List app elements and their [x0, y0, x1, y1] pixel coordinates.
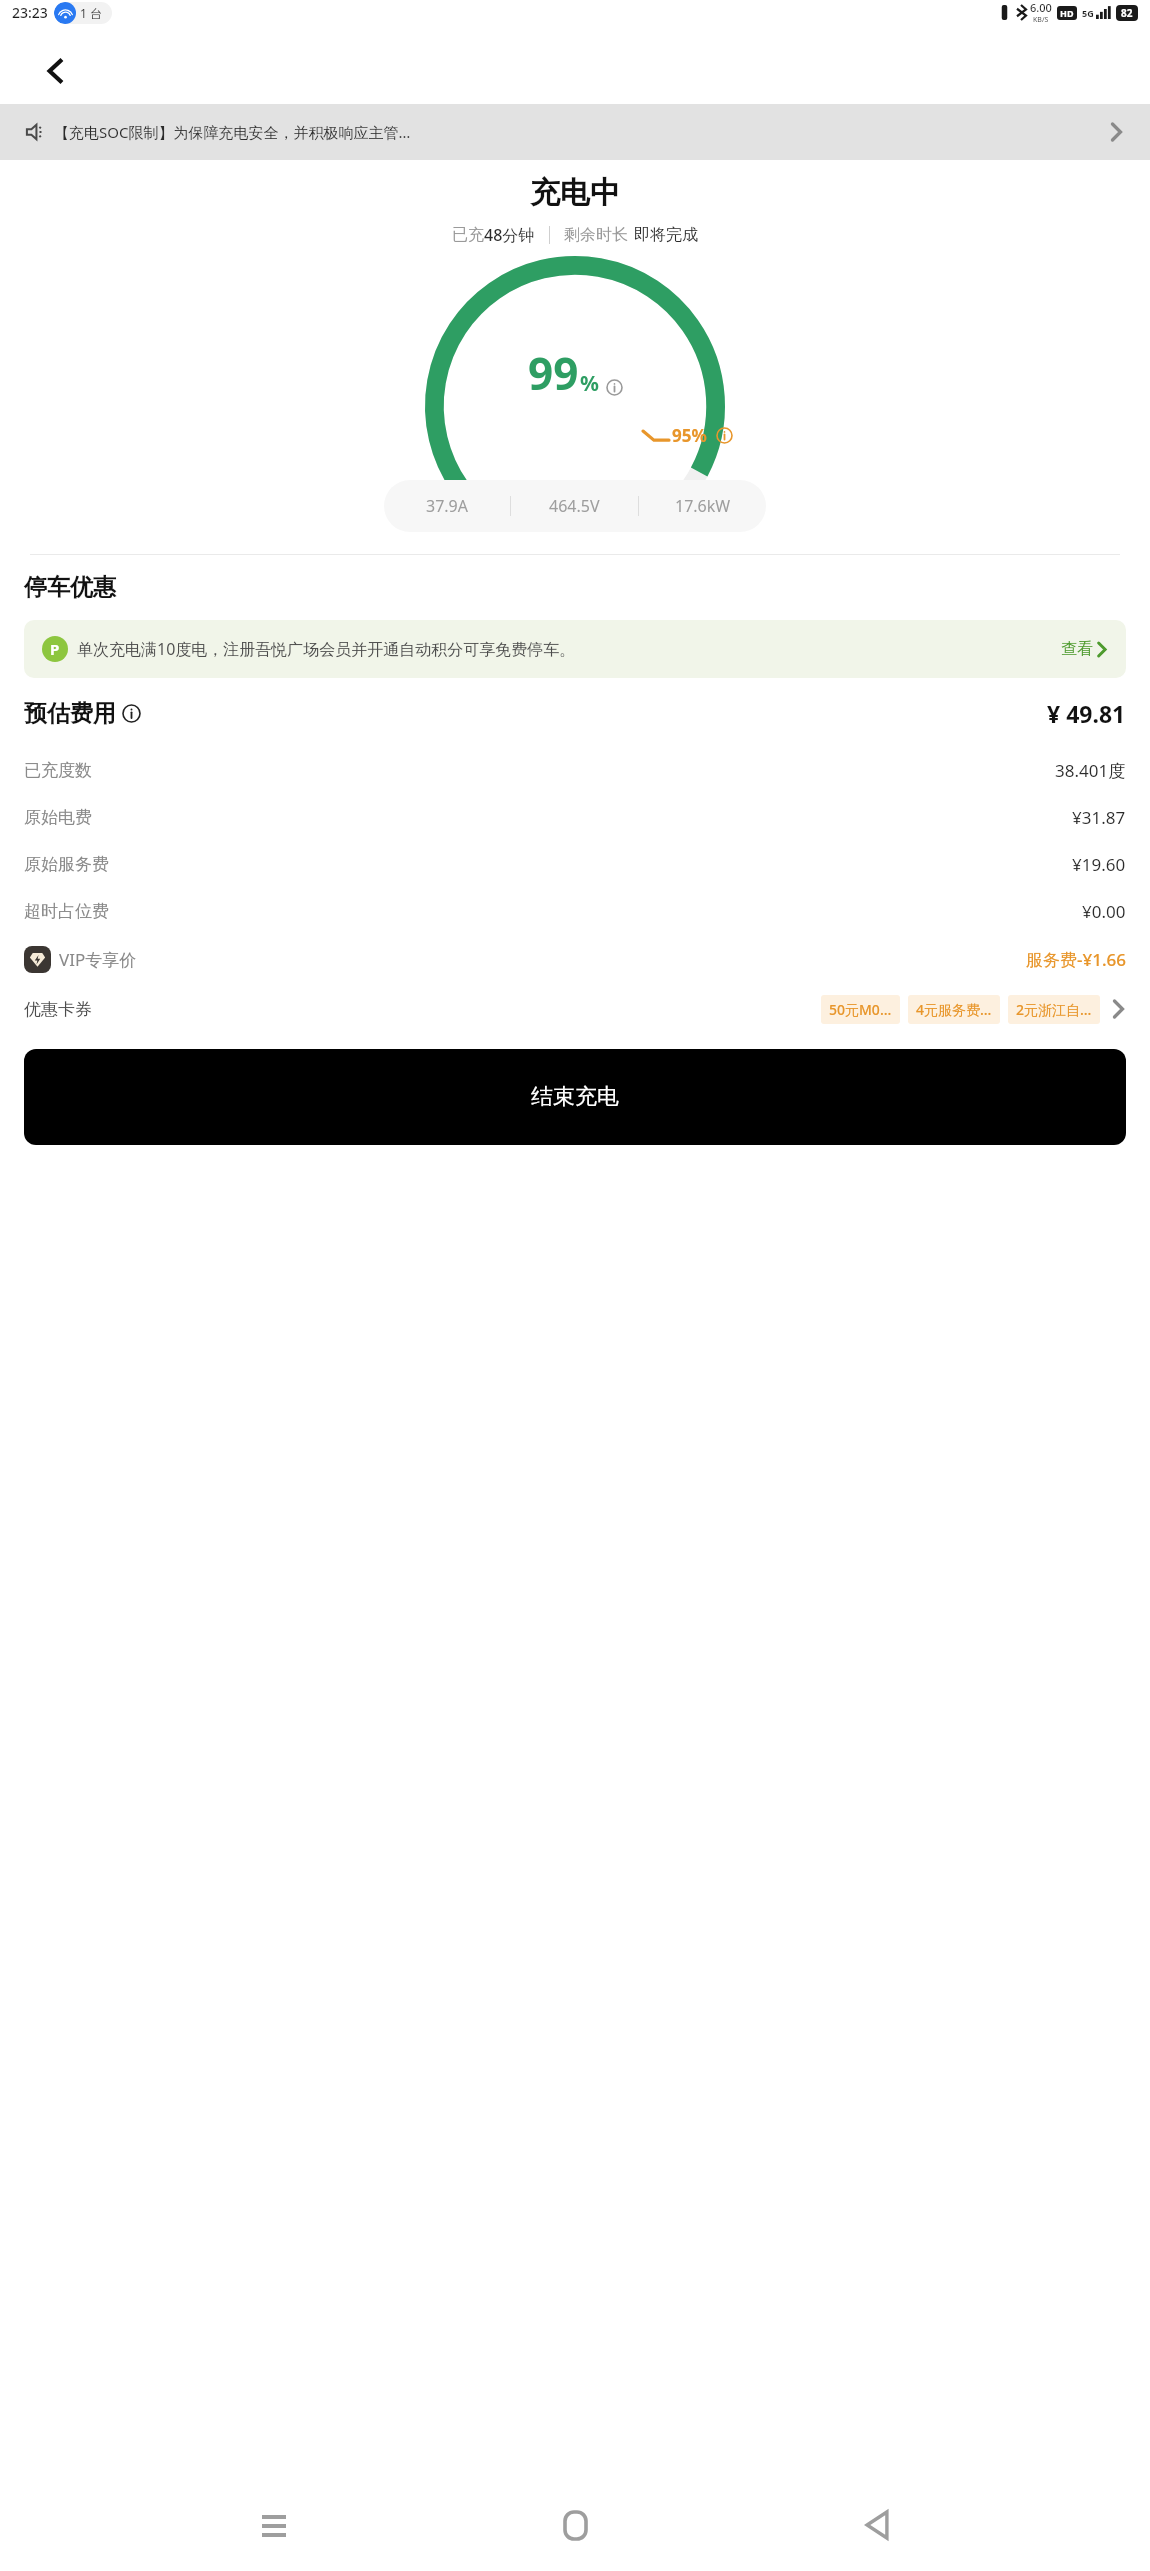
- staticText: 已充度数: [24, 760, 92, 781]
- staticText: 充电中: [530, 174, 620, 212]
- staticText: ¥0.00: [1082, 900, 1126, 923]
- staticText: 服务费-¥1.66: [1026, 948, 1126, 971]
- staticText: 37.9A: [426, 495, 468, 517]
- button[interactable]: 结束充电: [24, 1049, 1126, 1145]
- staticText: 4元服务费…: [916, 1000, 992, 1019]
- staticText: 【充电SOC限制】为保障充电安全，并积极响应主管…: [54, 122, 1100, 142]
- staticText: 结束充电: [531, 1083, 619, 1111]
- button[interactable]: 【充电SOC限制】为保障充电安全，并积极响应主管…: [0, 104, 1150, 160]
- button[interactable]: Back: [34, 49, 78, 93]
- button[interactable]: Recents: [246, 2497, 302, 2553]
- staticText: 原始电费: [24, 807, 92, 828]
- button[interactable]: Home: [547, 2497, 603, 2553]
- staticText: 464.5V: [549, 495, 600, 517]
- staticText: VIP专享价: [59, 948, 137, 971]
- button[interactable]: 95%: [643, 424, 733, 447]
- staticText: 2元浙江自…: [1016, 1000, 1092, 1019]
- staticText: 已充: [452, 225, 484, 245]
- staticText: HD: [1060, 7, 1074, 19]
- staticText: 48分钟: [484, 224, 535, 246]
- staticText: 即将完成: [634, 225, 698, 245]
- staticText: 剩余时长: [564, 225, 628, 245]
- staticText: 优惠卡券: [24, 999, 92, 1020]
- staticText: 17.6kW: [675, 495, 731, 517]
- staticText: 82: [1121, 6, 1133, 20]
- staticText: 95%: [672, 424, 707, 447]
- staticText: ¥ 49.81: [1047, 698, 1126, 729]
- staticText: 单次充电满10度电，注册吾悦广场会员并开通自动积分可享免费停车。: [77, 638, 1051, 660]
- staticText: 5G: [1082, 7, 1094, 19]
- button[interactable]: VIP专享价: [24, 935, 1126, 983]
- staticText: P: [50, 639, 60, 659]
- staticText: 超时占位费: [24, 901, 109, 922]
- staticText: 99: [528, 343, 579, 403]
- staticText: 50元M0…: [829, 1000, 892, 1019]
- staticText: 38.401度: [1055, 759, 1126, 782]
- staticText: %: [580, 369, 599, 398]
- staticText: 1 台: [80, 5, 102, 21]
- staticText: 原始服务费: [24, 854, 109, 875]
- button[interactable]: 费用说明: [122, 704, 141, 723]
- staticText: 停车优惠: [24, 573, 116, 602]
- staticText: KB/S: [1033, 15, 1049, 25]
- staticText: 查看: [1061, 639, 1093, 659]
- button[interactable]: Back: [849, 2497, 905, 2553]
- staticText: 6.00: [1030, 0, 1052, 15]
- staticText: ¥19.60: [1072, 853, 1126, 876]
- staticText: ¥31.87: [1072, 806, 1126, 829]
- button[interactable]: P: [24, 620, 1126, 678]
- staticText: 23:23: [12, 3, 48, 22]
- button[interactable]: 优惠卡券: [24, 983, 1126, 1035]
- staticText: 预估费用: [24, 699, 116, 728]
